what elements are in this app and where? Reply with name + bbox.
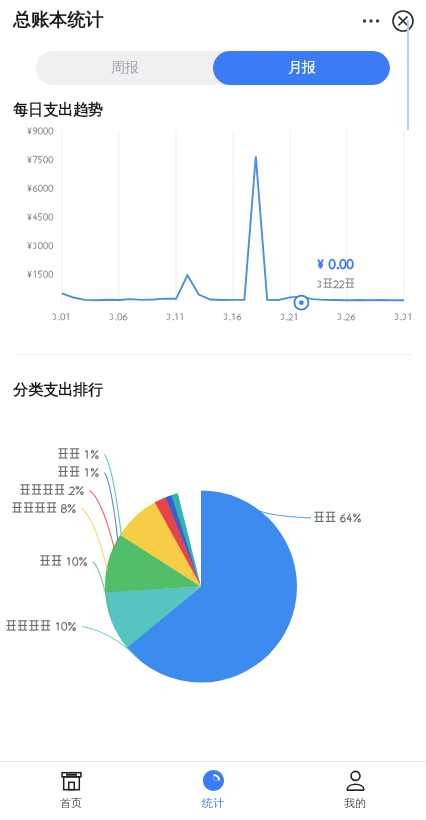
staticText: 总账本统计 [13,9,103,32]
button[interactable]: Close [388,6,418,36]
staticText: 首页 [60,796,82,810]
button[interactable]: More [354,4,388,38]
button[interactable]: 我的 [284,762,426,810]
staticText: 我的 [344,796,366,810]
button[interactable]: 首页 [0,762,142,810]
staticText: 周报 [111,59,139,77]
button[interactable]: 月报 [213,51,390,85]
staticText: 分类支出排行 [13,381,103,400]
button[interactable]: 周报 [36,51,213,85]
button[interactable]: 统计 [142,762,284,810]
staticText: 统计 [202,796,224,810]
staticText: 每日支出趋势 [13,101,103,120]
staticText: 月报 [288,59,316,77]
